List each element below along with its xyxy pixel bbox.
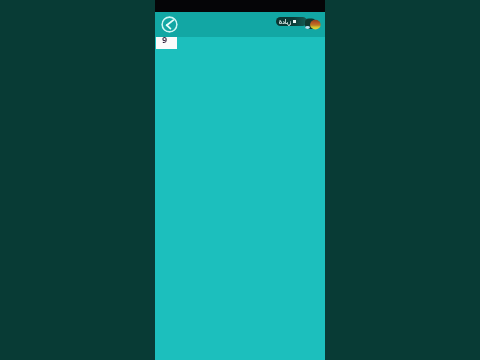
button[interactable]: Profile xyxy=(305,18,322,31)
button[interactable]: زيادة xyxy=(276,17,307,26)
staticText: زيادة xyxy=(279,18,292,25)
button[interactable]: Back xyxy=(161,16,178,33)
button[interactable]: 9 xyxy=(156,37,177,49)
staticText: 9 xyxy=(162,33,168,45)
